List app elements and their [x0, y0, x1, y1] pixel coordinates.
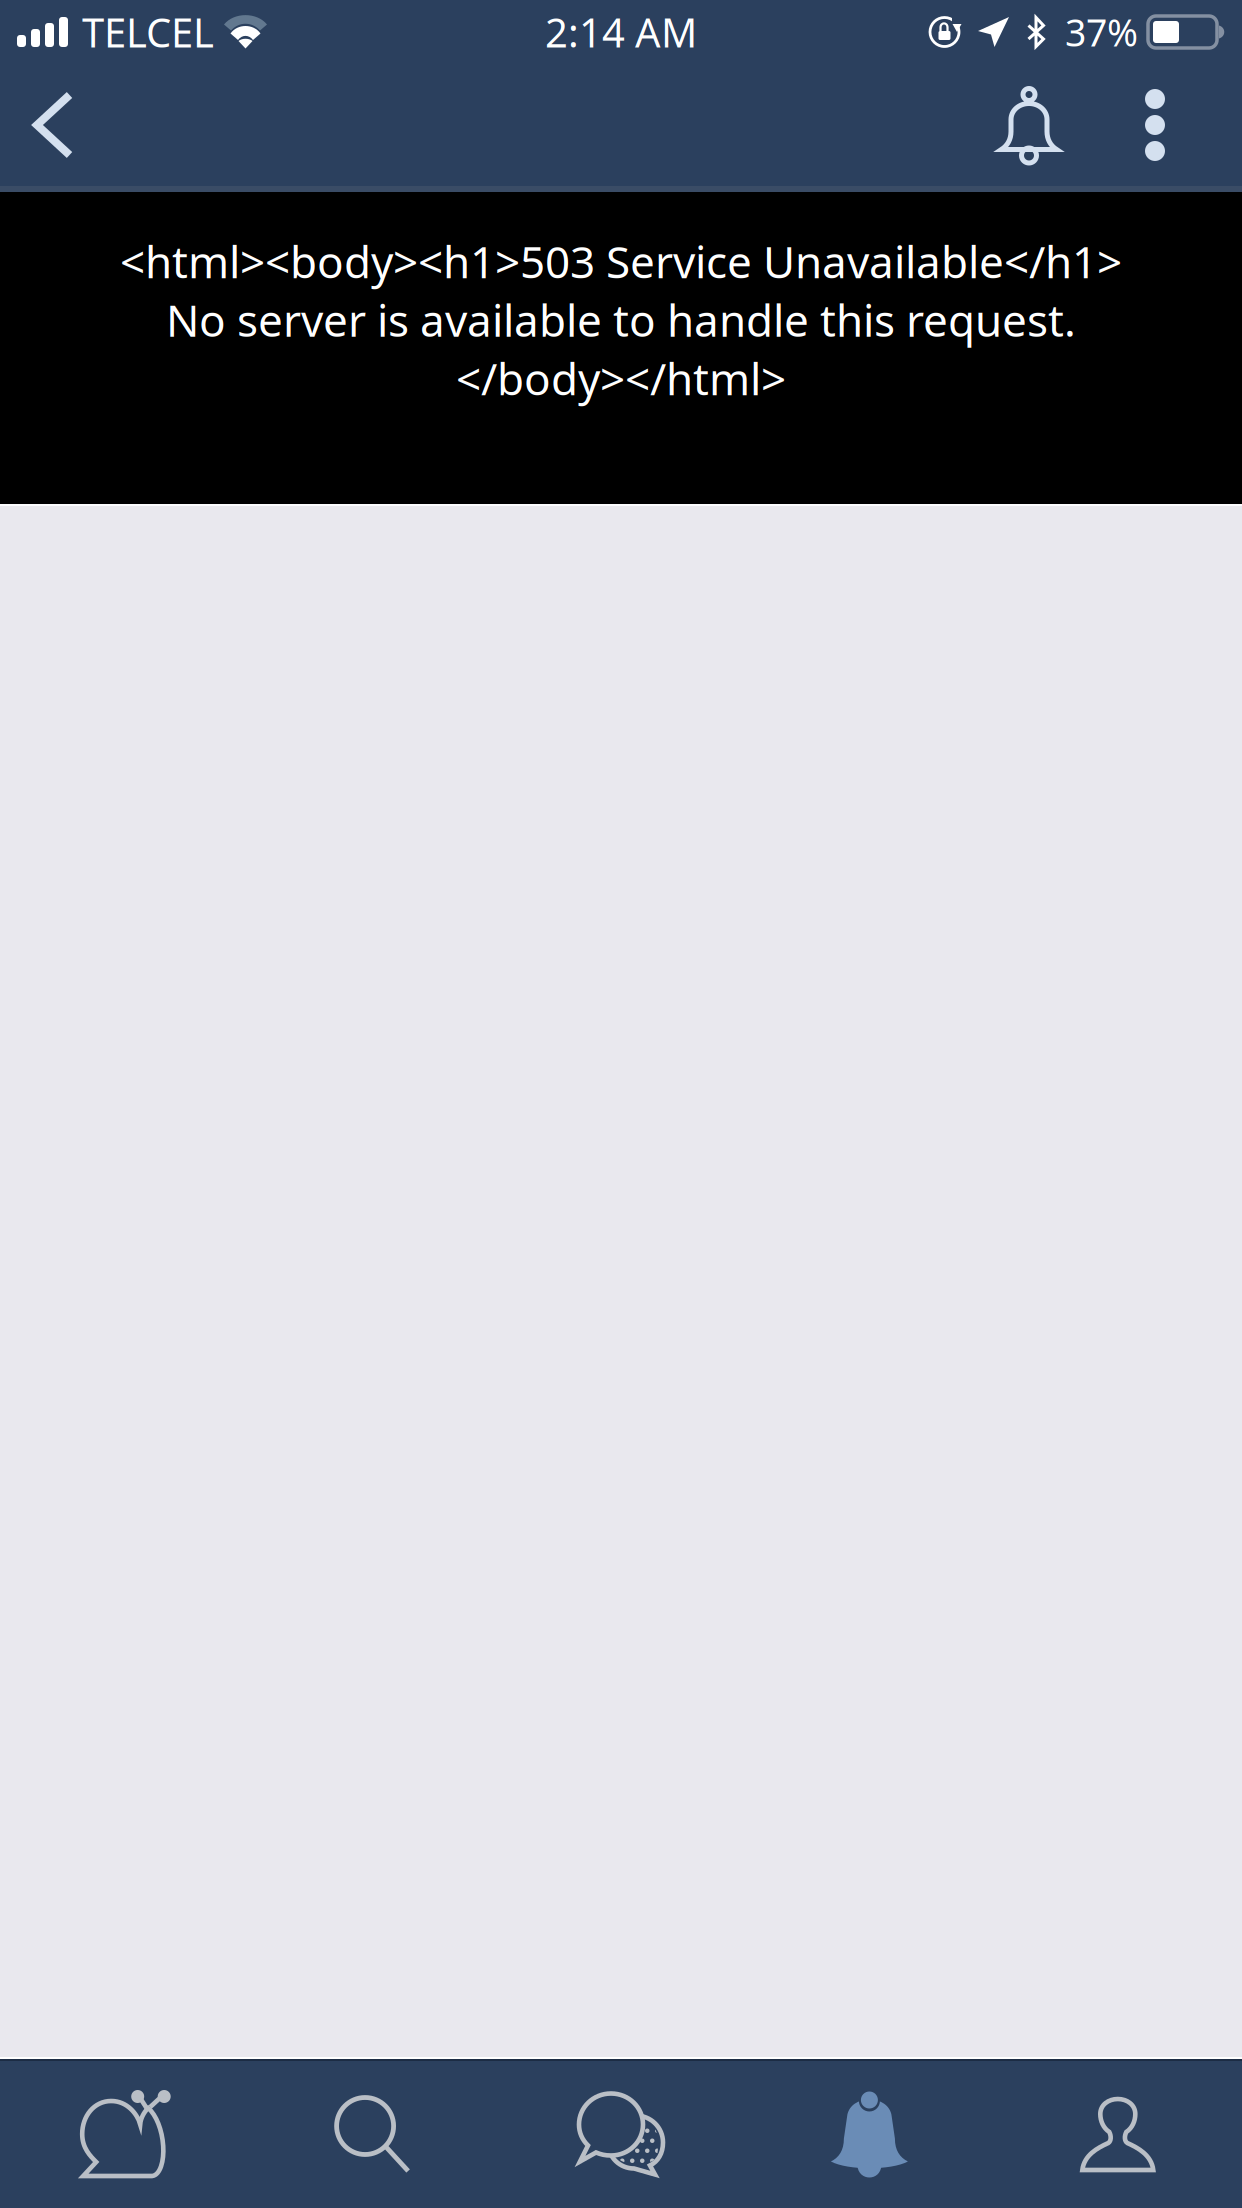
- button[interactable]: Search: [248, 2061, 497, 2208]
- staticText: <html><body><h1>503 Service Unavailable<…: [120, 232, 1122, 290]
- button[interactable]: Notifications: [960, 65, 1098, 185]
- button[interactable]: More options: [1105, 61, 1205, 189]
- button[interactable]: Herd: [0, 2061, 248, 2208]
- button[interactable]: Back: [0, 61, 106, 189]
- staticText: 37%: [1065, 7, 1138, 57]
- button[interactable]: Profile: [994, 2061, 1242, 2208]
- staticText: </body></html>: [456, 349, 786, 407]
- staticText: TELCEL: [82, 5, 214, 58]
- staticText: 2:14 AM: [545, 5, 697, 58]
- button[interactable]: Messages: [497, 2061, 745, 2208]
- staticText: No server is available to handle this re…: [166, 290, 1076, 349]
- button[interactable]: Notifications: [745, 2061, 994, 2208]
